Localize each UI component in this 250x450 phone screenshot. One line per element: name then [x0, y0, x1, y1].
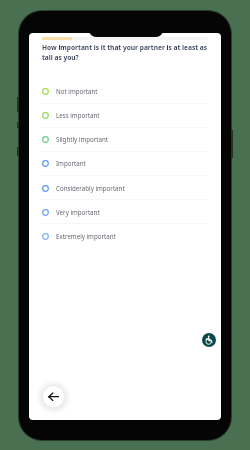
- staticText: Important: [56, 159, 86, 167]
- staticText: Slightly important: [56, 135, 109, 143]
- staticText: How important is it that your partner is…: [42, 43, 208, 62]
- button[interactable]: Slightly important: [29, 127, 221, 151]
- staticText: Very important: [56, 208, 100, 216]
- button[interactable]: Considerably important: [29, 176, 221, 200]
- staticText: Considerably important: [56, 184, 125, 192]
- staticText: Not important: [56, 87, 98, 95]
- staticText: Extremely important: [56, 232, 116, 240]
- button[interactable]: Back: [36, 379, 71, 414]
- staticText: Less important: [56, 111, 100, 119]
- button[interactable]: Very important: [29, 200, 221, 224]
- button[interactable]: Extremely important: [29, 224, 221, 248]
- button[interactable]: Less important: [29, 103, 221, 127]
- button[interactable]: Accessibility options: [202, 333, 216, 347]
- button[interactable]: Not important: [29, 79, 221, 103]
- button[interactable]: Important: [29, 151, 221, 175]
